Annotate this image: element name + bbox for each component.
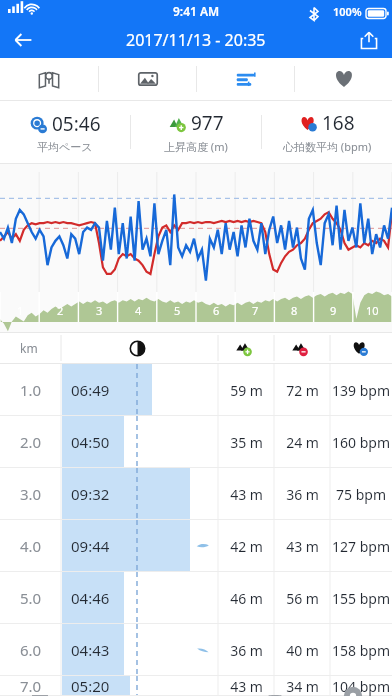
staticText: 5 xyxy=(174,303,181,318)
staticText: 6 xyxy=(213,303,220,318)
button[interactable]: 977 xyxy=(131,101,261,163)
button[interactable]: 3.0 xyxy=(0,468,392,520)
staticText: 9 xyxy=(330,303,337,318)
staticText: 09:44 xyxy=(71,536,110,556)
button[interactable]: 5.0 xyxy=(0,572,392,624)
staticText: 104 bpm xyxy=(330,677,392,696)
button[interactable]: Share xyxy=(346,22,392,58)
staticText: 3 xyxy=(96,303,103,318)
staticText: 04:50 xyxy=(71,432,110,452)
button[interactable]: Heart rate xyxy=(295,58,392,100)
staticText: 2.0 xyxy=(20,432,42,452)
staticText: 46 m xyxy=(218,589,275,608)
staticText: 42 m xyxy=(218,537,275,556)
button[interactable]: 6.0 xyxy=(0,624,392,676)
button[interactable]: 4.0 xyxy=(0,520,392,572)
staticText: 1 xyxy=(17,303,24,318)
staticText: 1.0 xyxy=(20,380,42,400)
staticText: 40 m xyxy=(274,641,331,660)
staticText: 100% xyxy=(333,4,362,19)
staticText: 127 bpm xyxy=(330,537,392,556)
staticText: 05:20 xyxy=(71,676,110,696)
button[interactable]: Photos xyxy=(99,58,196,100)
staticText: 10 xyxy=(366,303,379,318)
staticText: 56 m xyxy=(274,589,331,608)
staticText: 05:46 xyxy=(52,111,101,137)
staticText: 36 m xyxy=(274,485,331,504)
button[interactable]: 2.0 xyxy=(0,416,392,468)
staticText: 9:41 AM xyxy=(173,3,220,19)
staticText: 上昇高度 (m) xyxy=(164,139,228,154)
button[interactable]: Splits xyxy=(197,58,294,100)
staticText: 3.0 xyxy=(20,484,42,504)
staticText: 09:32 xyxy=(71,484,110,504)
staticText: 06:49 xyxy=(71,380,110,400)
button[interactable]: Back xyxy=(0,22,46,58)
staticText: 43 m xyxy=(218,677,275,696)
staticText: 2 xyxy=(57,303,64,318)
staticText: 2017/11/13 - 20:35 xyxy=(126,29,266,51)
staticText: 155 bpm xyxy=(330,589,392,608)
button[interactable]: Map xyxy=(0,58,98,100)
staticText: 59 m xyxy=(218,381,275,400)
staticText: 7 xyxy=(252,303,259,318)
staticText: 43 m xyxy=(218,485,275,504)
staticText: 168 xyxy=(322,110,355,136)
staticText: 72 m xyxy=(274,381,331,400)
staticText: 139 bpm xyxy=(330,381,392,400)
staticText: 35 m xyxy=(218,433,275,452)
staticText: 4 xyxy=(135,303,142,318)
button[interactable]: 7.0 xyxy=(0,676,392,696)
staticText: 平均ペース xyxy=(37,140,93,154)
staticText: 75 bpm xyxy=(330,485,392,504)
staticText: 43 m xyxy=(274,537,331,556)
staticText: km xyxy=(20,340,38,356)
staticText: 977 xyxy=(191,110,224,136)
staticText: 6.0 xyxy=(20,640,42,660)
staticText: 心拍数平均 (bpm) xyxy=(283,139,372,154)
staticText: 160 bpm xyxy=(330,433,392,452)
button[interactable]: 1.0 xyxy=(0,364,392,416)
staticText: 34 m xyxy=(274,677,331,696)
button[interactable]: 05:46 xyxy=(0,101,130,163)
staticText: 158 bpm xyxy=(330,641,392,660)
staticText: 04:43 xyxy=(71,640,110,660)
staticText: 24 m xyxy=(274,433,331,452)
staticText: 04:46 xyxy=(71,588,110,608)
staticText: 36 m xyxy=(218,641,275,660)
staticText: 4.0 xyxy=(20,536,42,556)
staticText: 8 xyxy=(291,303,298,318)
button[interactable]: 168 xyxy=(262,101,392,163)
staticText: 5.0 xyxy=(20,588,42,608)
staticText: 7.0 xyxy=(20,676,42,696)
